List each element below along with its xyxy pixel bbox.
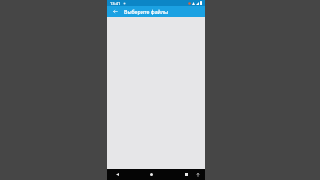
button[interactable]: Back (113, 170, 122, 179)
button[interactable]: Hide keyboard (194, 171, 202, 179)
button[interactable]: Home (147, 170, 156, 179)
staticText: Выберите файлы (124, 8, 169, 15)
button[interactable]: Back (111, 7, 120, 16)
button[interactable]: Recent apps (182, 170, 191, 179)
staticText: 13:41 (110, 1, 121, 6)
